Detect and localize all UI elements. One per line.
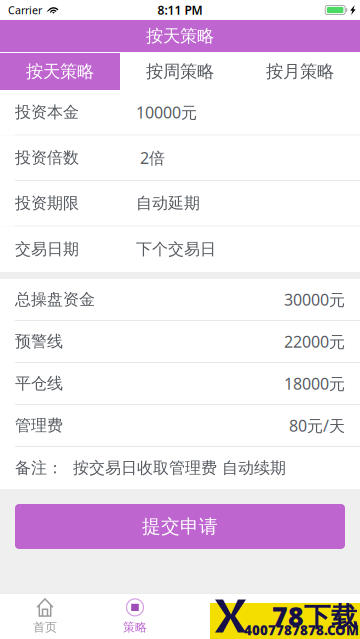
staticText: 按天策略 xyxy=(26,61,94,82)
staticText: 投资期限 xyxy=(15,193,79,213)
button[interactable]: 按周策略 xyxy=(120,53,240,90)
staticText: 管理费 xyxy=(15,416,63,435)
staticText: 投资倍数 xyxy=(15,148,79,168)
staticText: 按天策略 xyxy=(146,25,214,47)
staticText: 10000元 xyxy=(136,102,197,123)
staticText: 按月策略 xyxy=(266,61,334,82)
button[interactable]: 按月策略 xyxy=(240,53,360,90)
staticText: 下个交易日 xyxy=(136,239,216,259)
staticText: 策略 xyxy=(123,620,147,635)
staticText: Carrier xyxy=(8,3,42,17)
staticText: 80元/天 xyxy=(289,415,345,436)
staticText: 总操盘资金 xyxy=(15,290,95,309)
staticText: 按周策略 xyxy=(146,61,214,82)
staticText: 18000元 xyxy=(284,373,345,394)
staticText: 78下载 xyxy=(272,598,358,634)
staticText: 平仓线 xyxy=(15,374,63,393)
button[interactable]: 按天策略 xyxy=(0,53,120,90)
button[interactable]: 策略 xyxy=(90,594,180,639)
button[interactable]: 提交申请 xyxy=(15,504,345,549)
staticText: 8:11 PM xyxy=(157,2,202,18)
staticText: 2倍 xyxy=(136,147,165,168)
staticText: 首页 xyxy=(33,620,57,635)
staticText: 自动延期 xyxy=(136,193,200,213)
staticText: 22000元 xyxy=(284,331,345,352)
staticText: 投资本金 xyxy=(15,102,79,122)
staticText: 预警线 xyxy=(15,332,63,351)
staticText: 30000元 xyxy=(284,289,345,310)
staticText: 交易日期 xyxy=(15,239,79,259)
staticText: 4007787878.COM xyxy=(244,621,359,639)
staticText: 备注： 按交易日收取管理费 自动续期 xyxy=(15,458,286,478)
staticText: 提交申请 xyxy=(142,515,218,538)
button[interactable]: 首页 xyxy=(0,594,90,639)
